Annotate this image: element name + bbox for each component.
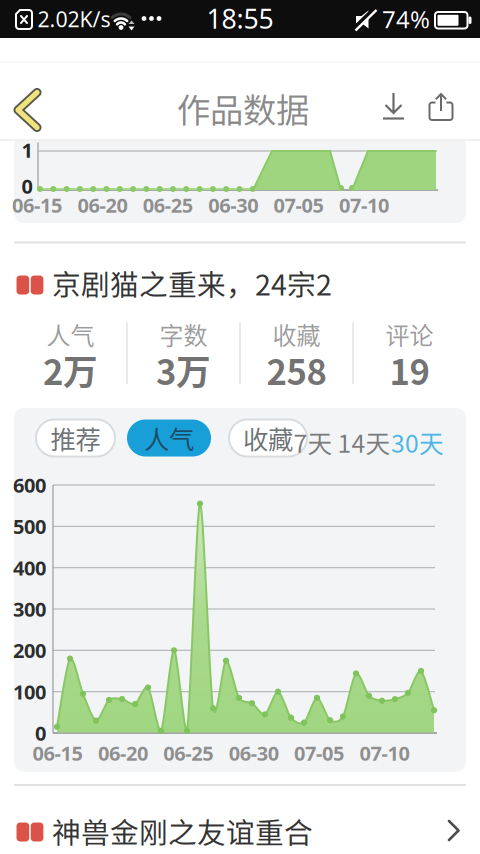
staticText: 300: [13, 596, 46, 622]
staticText: 06-30: [229, 740, 279, 766]
staticText: 07-05: [274, 192, 324, 218]
staticText: 0: [21, 173, 32, 199]
staticText: 18:55: [206, 1, 273, 36]
staticText: 74%: [382, 3, 430, 35]
staticText: 200: [13, 637, 46, 664]
staticText: 100: [13, 678, 46, 705]
staticText: 400: [13, 554, 46, 581]
staticText: 06-25: [143, 192, 193, 218]
staticText: 7天: [293, 424, 332, 460]
staticText: 人气: [46, 317, 94, 351]
staticText: 258: [266, 345, 326, 395]
staticText: 2.02K/s: [37, 5, 110, 33]
button[interactable]: 14天: [334, 425, 394, 459]
staticText: 收藏: [243, 420, 293, 456]
staticText: 07-10: [359, 740, 409, 766]
staticText: 06-20: [77, 192, 127, 218]
button[interactable]: Back: [11, 88, 45, 132]
button[interactable]: 7天: [289, 425, 337, 459]
staticText: 字数: [159, 317, 207, 351]
button[interactable]: Share: [426, 91, 456, 123]
staticText: 06-15: [32, 740, 82, 766]
button[interactable]: 神兽金刚之友谊重合: [0, 800, 480, 854]
staticText: 07-10: [339, 192, 389, 218]
staticText: 0: [35, 720, 46, 746]
staticText: 06-30: [208, 192, 258, 218]
staticText: 06-25: [163, 740, 213, 766]
staticText: 神兽金刚之友谊重合: [52, 810, 313, 852]
staticText: 2万: [43, 345, 98, 395]
staticText: 14天: [337, 424, 390, 460]
staticText: 京剧猫之重来，24宗2: [52, 262, 332, 304]
staticText: 06-15: [12, 192, 62, 218]
staticText: 19: [389, 345, 429, 395]
staticText: 收藏: [272, 317, 320, 351]
button[interactable]: 30天: [387, 425, 447, 459]
button[interactable]: 推荐: [36, 419, 115, 456]
staticText: 500: [13, 513, 46, 540]
button[interactable]: 收藏: [229, 419, 307, 456]
staticText: 07-05: [294, 740, 344, 766]
staticText: 600: [13, 472, 46, 498]
staticText: 3万: [156, 345, 211, 395]
staticText: 推荐: [50, 420, 100, 456]
staticText: 06-20: [98, 740, 148, 766]
button[interactable]: Download: [375, 87, 411, 127]
staticText: 评论: [385, 317, 433, 351]
staticText: 30天: [391, 424, 444, 460]
staticText: 作品数据: [177, 84, 309, 132]
button[interactable]: 人气: [127, 419, 211, 456]
staticText: 人气: [144, 420, 194, 456]
staticText: 1: [21, 137, 32, 163]
